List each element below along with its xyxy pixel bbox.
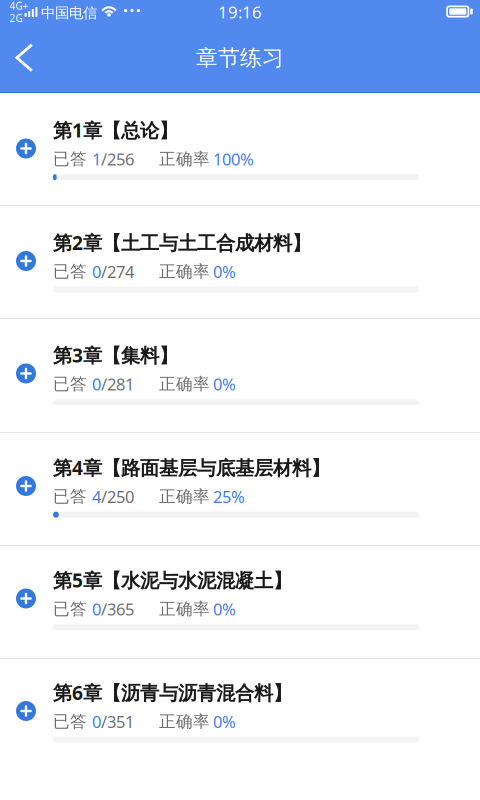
- staticText: 0: [92, 260, 101, 283]
- staticText: /256: [101, 148, 134, 170]
- button[interactable]: 第2章【土工与土工合成材料】: [0, 205, 480, 318]
- staticText: /365: [101, 598, 134, 620]
- button[interactable]: 第6章【沥青与沥青混合料】: [0, 655, 480, 768]
- staticText: 正确率: [159, 486, 210, 507]
- staticText: 0%: [213, 373, 236, 395]
- button[interactable]: 第4章【路面基层与底基层材料】: [0, 430, 480, 543]
- staticText: 中国电信: [41, 4, 97, 22]
- staticText: 第6章【沥青与沥青混合料】: [53, 679, 292, 706]
- staticText: /351: [101, 710, 134, 733]
- staticText: 正确率: [159, 599, 210, 619]
- staticText: 第3章【集料】: [53, 342, 178, 368]
- staticText: /250: [101, 485, 134, 508]
- staticText: 4: [92, 485, 101, 508]
- staticText: /281: [101, 373, 134, 395]
- button[interactable]: 第1章【总论】: [0, 93, 480, 205]
- staticText: 2G: [9, 11, 22, 25]
- button[interactable]: 第3章【集料】: [0, 318, 480, 430]
- staticText: 正确率: [159, 711, 210, 732]
- staticText: 章节练习: [196, 44, 284, 72]
- staticText: 19:16: [218, 1, 262, 23]
- staticText: 0%: [213, 710, 236, 733]
- staticText: 0%: [213, 598, 236, 620]
- staticText: /274: [101, 260, 134, 283]
- staticText: 第2章【土工与土工合成材料】: [53, 229, 311, 256]
- staticText: 已答: [53, 261, 92, 282]
- staticText: 第4章【路面基层与底基层材料】: [53, 454, 330, 481]
- staticText: 已答: [53, 486, 92, 507]
- staticText: 0%: [213, 260, 236, 283]
- staticText: 已答: [53, 149, 92, 169]
- staticText: 100%: [213, 148, 254, 170]
- staticText: 已答: [53, 374, 92, 394]
- staticText: 正确率: [159, 149, 210, 169]
- staticText: 第1章【总论】: [53, 117, 178, 143]
- staticText: 正确率: [159, 261, 210, 282]
- staticText: 0: [92, 373, 101, 395]
- staticText: 已答: [53, 711, 92, 732]
- staticText: 正确率: [159, 374, 210, 394]
- staticText: 1: [92, 148, 101, 170]
- button[interactable]: Back: [0, 24, 50, 92]
- staticText: 4G+: [9, 0, 28, 13]
- staticText: 0: [92, 598, 101, 620]
- staticText: 第5章【水泥与水泥混凝土】: [53, 567, 292, 593]
- button[interactable]: 第5章【水泥与水泥混凝土】: [0, 543, 480, 655]
- staticText: 0: [92, 710, 101, 733]
- staticText: 25%: [213, 485, 245, 508]
- staticText: 已答: [53, 599, 92, 619]
